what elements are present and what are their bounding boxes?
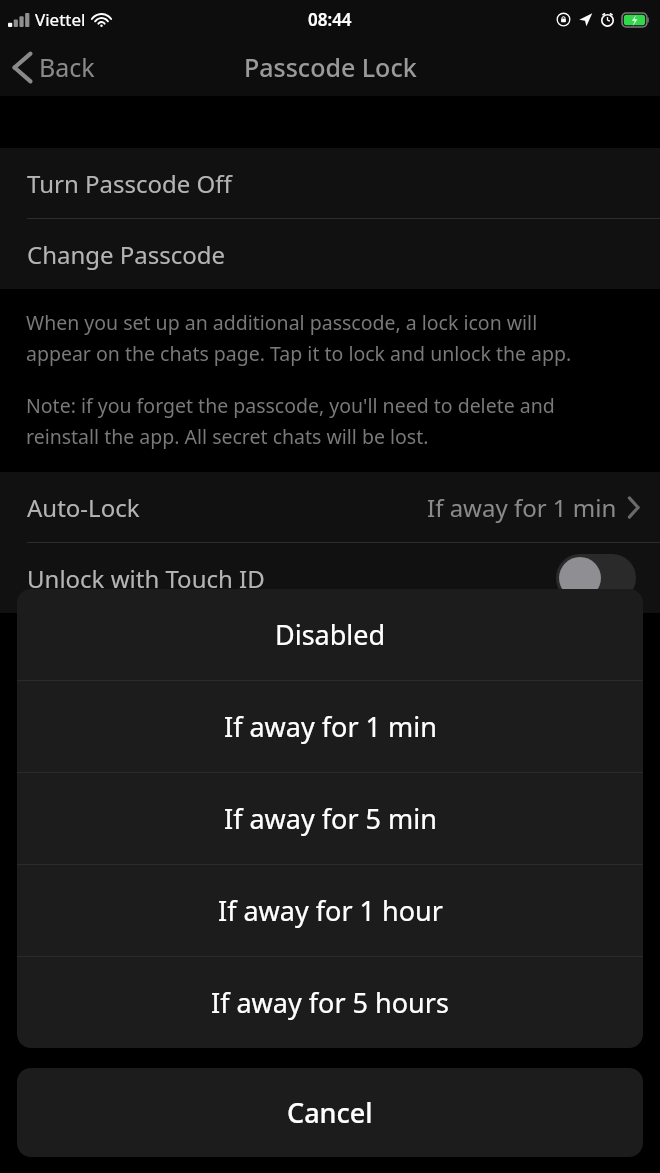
button[interactable]: If away for 5 hours xyxy=(17,957,643,1048)
button[interactable]: Auto-Lock xyxy=(0,472,660,542)
staticText: Passcode Lock xyxy=(244,50,417,84)
button[interactable]: Change Passcode xyxy=(0,219,660,289)
staticText: Cancel xyxy=(287,1094,373,1131)
button[interactable]: Disabled xyxy=(17,589,643,680)
staticText: Turn Passcode Off xyxy=(27,167,232,200)
staticText: If away for 5 min xyxy=(224,800,437,837)
button[interactable]: Cancel xyxy=(17,1068,643,1157)
staticText: When you set up an additional passcode, … xyxy=(26,309,538,336)
staticText: Back xyxy=(39,50,95,84)
staticText: reinstall the app. All secret chats will… xyxy=(26,423,429,450)
staticText: If away for 1 hour xyxy=(218,892,443,929)
staticText: Disabled xyxy=(275,616,386,653)
staticText: If away for 1 min xyxy=(427,491,617,524)
button[interactable]: Unlock with Touch ID xyxy=(0,543,660,613)
button[interactable]: If away for 1 min xyxy=(17,681,643,772)
button[interactable]: If away for 1 hour xyxy=(17,865,643,956)
staticText: 08:44 xyxy=(308,8,352,31)
staticText: If away for 5 hours xyxy=(211,984,449,1021)
staticText: Auto-Lock xyxy=(27,491,140,524)
staticText: Unlock with Touch ID xyxy=(27,562,265,595)
button[interactable]: Back xyxy=(0,44,109,90)
button[interactable]: If away for 5 min xyxy=(17,773,643,864)
staticText: Change Passcode xyxy=(27,238,226,271)
staticText: If away for 1 min xyxy=(224,708,437,745)
button[interactable]: Turn Passcode Off xyxy=(0,148,660,218)
staticText: Viettel xyxy=(35,8,86,31)
staticText: Note: if you forget the passcode, you'll… xyxy=(26,392,555,419)
staticText: appear on the chats page. Tap it to lock… xyxy=(26,340,572,367)
